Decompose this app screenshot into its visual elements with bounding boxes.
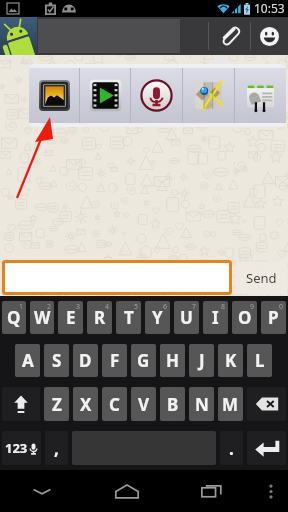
staticText: 10:53 [254, 0, 285, 16]
staticText: R [94, 306, 106, 329]
button[interactable]: F [102, 344, 127, 377]
button[interactable]: J [189, 344, 214, 377]
staticText: 2 [47, 302, 52, 312]
staticText: M [222, 393, 239, 416]
staticText: 5 [134, 302, 139, 312]
button[interactable]: Q [2, 301, 26, 334]
staticText: N [195, 393, 209, 416]
button[interactable]: M [218, 387, 243, 421]
button[interactable]: Backspace [247, 387, 286, 421]
staticText: Z [52, 393, 62, 416]
staticText: D [79, 349, 92, 372]
staticText: F [110, 349, 120, 372]
button[interactable]: Emoji [251, 17, 288, 55]
button[interactable]: Symbols and voice input [2, 431, 41, 465]
button[interactable]: , [45, 431, 68, 465]
staticText: 1 [19, 302, 24, 312]
staticText: B [167, 393, 179, 416]
button[interactable]: A [15, 344, 40, 377]
button[interactable]: R [87, 301, 112, 334]
staticText: 7 [192, 302, 197, 312]
button[interactable]: Contact avatar [0, 17, 37, 55]
staticText: , [54, 437, 59, 460]
button[interactable]: Enter [247, 431, 286, 465]
button[interactable]: Video [80, 68, 130, 123]
button[interactable]: L [247, 344, 272, 377]
button[interactable]: Location [183, 68, 234, 123]
button[interactable]: S [44, 344, 69, 377]
staticText: 0 [279, 302, 284, 312]
button[interactable]: B [160, 387, 185, 421]
staticText: L [255, 349, 265, 372]
button[interactable]: Send [236, 262, 287, 294]
button[interactable]: W [30, 301, 54, 334]
button[interactable]: Shift [2, 387, 40, 421]
staticText: . [229, 437, 234, 460]
staticText: U [180, 306, 193, 329]
staticText: Y [152, 306, 163, 329]
button[interactable]: Contact [235, 68, 286, 123]
staticText: Send [246, 269, 277, 287]
staticText: C [109, 393, 120, 416]
staticText: I [212, 306, 219, 329]
button[interactable]: G [131, 344, 156, 377]
button[interactable]: D [73, 344, 98, 377]
staticText: V [138, 393, 150, 416]
staticText: W [34, 306, 51, 329]
staticText: 123 [5, 439, 28, 457]
staticText: 8 [221, 302, 226, 312]
staticText: 6 [163, 302, 168, 312]
staticText: T [124, 306, 134, 329]
button[interactable]: N [189, 387, 214, 421]
staticText: J [199, 349, 205, 372]
staticText: P [268, 306, 279, 329]
button[interactable]: Attach [209, 17, 250, 55]
button[interactable]: . [220, 431, 243, 465]
button[interactable]: U [174, 301, 199, 334]
button[interactable]: Recent apps [169, 470, 254, 512]
button[interactable]: V [131, 387, 156, 421]
staticText: G [137, 349, 150, 372]
button[interactable]: P [261, 301, 286, 334]
staticText: H [166, 349, 180, 372]
button[interactable]: Audio [131, 68, 182, 123]
staticText: A [22, 349, 34, 372]
staticText: O [238, 306, 252, 329]
staticText: 4 [105, 302, 110, 312]
button[interactable]: X [73, 387, 98, 421]
button[interactable]: K [218, 344, 243, 377]
staticText: K [225, 349, 237, 372]
button[interactable]: H [160, 344, 185, 377]
staticText: 9 [250, 302, 255, 312]
staticText: S [52, 349, 62, 372]
button[interactable]: Home [84, 470, 169, 512]
staticText: X [80, 393, 92, 416]
button[interactable]: C [102, 387, 127, 421]
staticText: E [66, 306, 76, 329]
staticText: Q [7, 306, 21, 329]
button[interactable]: Y [145, 301, 170, 334]
button[interactable]: Gallery [29, 68, 79, 123]
button[interactable]: Z [44, 387, 69, 421]
button[interactable]: T [116, 301, 141, 334]
button[interactable]: More options [254, 470, 288, 512]
staticText: 3 [76, 302, 81, 312]
button[interactable]: O [232, 301, 257, 334]
button[interactable]: Back [0, 470, 84, 512]
button[interactable]: I [203, 301, 228, 334]
button[interactable]: E [58, 301, 83, 334]
